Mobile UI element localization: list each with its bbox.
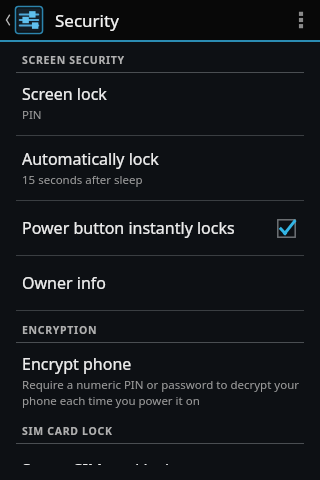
staticText: Require a numeric PIN or password to dec… xyxy=(22,377,304,408)
button[interactable]: Power button instantly locks xyxy=(0,201,320,255)
staticText: Encrypt phone xyxy=(22,353,132,375)
button[interactable]: Screen lock xyxy=(0,73,320,135)
staticText: SCREEN SECURITY xyxy=(22,53,125,67)
staticText: ENCRYPTION xyxy=(22,323,98,337)
staticText: PIN xyxy=(22,107,42,123)
staticText: Automatically lock xyxy=(22,148,159,170)
button[interactable]: Automatically lock xyxy=(0,136,320,200)
staticText: Owner info xyxy=(22,272,106,294)
staticText: Screen lock xyxy=(22,83,107,105)
button[interactable]: More options xyxy=(282,0,320,40)
staticText: Power button instantly locks xyxy=(22,217,235,239)
staticText: Security xyxy=(55,9,119,32)
button[interactable]: Owner info xyxy=(0,256,320,310)
button[interactable]: Navigate up xyxy=(0,6,47,34)
staticText: Set up SIM card lock xyxy=(22,459,174,465)
staticText: SIM CARD LOCK xyxy=(22,424,113,438)
button[interactable]: Encrypt phone xyxy=(0,343,320,418)
staticText: 15 seconds after sleep xyxy=(22,172,143,188)
button[interactable]: Set up SIM card lock xyxy=(0,444,320,480)
